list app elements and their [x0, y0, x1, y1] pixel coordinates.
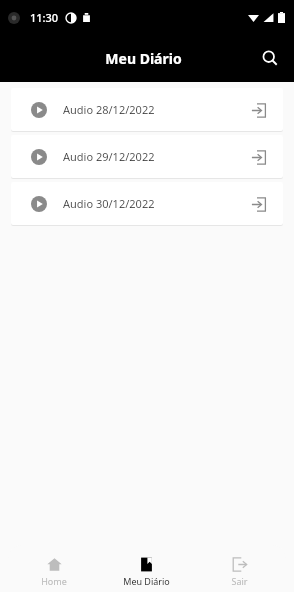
staticText: Audio 29/12/2022	[63, 149, 155, 164]
staticText: Meu Diário	[123, 575, 170, 587]
button[interactable]: Open	[245, 97, 271, 123]
staticText: 11:30	[30, 10, 59, 25]
button[interactable]: Play	[11, 135, 283, 178]
button[interactable]: Play	[27, 145, 51, 169]
staticText: Audio 30/12/2022	[63, 196, 155, 211]
staticText: Audio 28/12/2022	[63, 102, 155, 117]
button[interactable]: Open	[245, 191, 271, 217]
staticText: Sair	[231, 575, 248, 587]
button[interactable]: Home	[8, 551, 100, 587]
button[interactable]: Play	[27, 98, 51, 122]
staticText: Meu Diário	[105, 49, 182, 68]
staticText: Home	[41, 575, 67, 587]
button[interactable]: Play	[11, 182, 283, 225]
button[interactable]: Sair	[193, 551, 286, 587]
button[interactable]: Open	[245, 144, 271, 170]
button[interactable]: Search	[254, 42, 286, 74]
button[interactable]: Play	[11, 88, 283, 131]
button[interactable]: Play	[27, 192, 51, 216]
button[interactable]: Meu Diário	[100, 551, 193, 587]
